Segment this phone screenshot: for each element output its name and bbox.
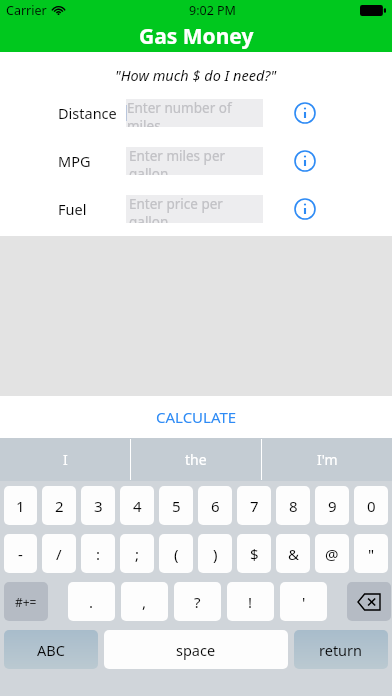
staticText: ? bbox=[194, 592, 201, 612]
staticText: #+= bbox=[15, 594, 37, 610]
staticText: 1 bbox=[16, 496, 25, 516]
button[interactable]: Info about MPG bbox=[291, 147, 319, 175]
staticText: Distance bbox=[58, 103, 117, 123]
button[interactable]: Info about Fuel bbox=[291, 195, 319, 223]
staticText: . bbox=[89, 592, 94, 612]
button[interactable]: ; bbox=[120, 534, 154, 573]
button[interactable]: 4 bbox=[120, 486, 154, 525]
staticText: ) bbox=[213, 544, 218, 564]
staticText: - bbox=[18, 544, 23, 564]
staticText: space bbox=[176, 640, 216, 660]
staticText: & bbox=[288, 544, 299, 564]
button[interactable]: Info about Distance bbox=[291, 99, 319, 127]
button[interactable]: Backspace bbox=[347, 582, 391, 621]
button[interactable]: space bbox=[104, 630, 288, 669]
staticText: @ bbox=[325, 544, 339, 564]
staticText: 7 bbox=[250, 496, 259, 516]
staticText: 9 bbox=[328, 496, 337, 516]
staticText: : bbox=[96, 544, 101, 564]
button[interactable]: CALCULATE bbox=[0, 396, 392, 438]
button[interactable]: 2 bbox=[42, 486, 76, 525]
staticText: 4 bbox=[133, 496, 142, 516]
staticText: 9:02 PM bbox=[189, 2, 236, 19]
button[interactable]: ? bbox=[174, 582, 221, 621]
staticText: CALCULATE bbox=[156, 407, 237, 427]
button[interactable]: I'm bbox=[262, 438, 392, 481]
staticText: I'm bbox=[317, 450, 338, 469]
staticText: " bbox=[368, 544, 375, 564]
staticText: 0 bbox=[367, 496, 376, 516]
button[interactable]: #+= bbox=[4, 582, 48, 621]
button[interactable]: , bbox=[121, 582, 168, 621]
button[interactable]: 7 bbox=[237, 486, 271, 525]
staticText: ' bbox=[302, 592, 306, 612]
button[interactable]: I bbox=[0, 438, 130, 481]
button[interactable]: the bbox=[131, 438, 261, 481]
button[interactable]: . bbox=[68, 582, 115, 621]
button[interactable]: & bbox=[276, 534, 310, 573]
staticText: Fuel bbox=[58, 199, 87, 219]
staticText: 6 bbox=[211, 496, 220, 516]
staticText: 2 bbox=[55, 496, 64, 516]
staticText: "How much $ do I need?" bbox=[115, 65, 277, 85]
button[interactable]: 0 bbox=[354, 486, 388, 525]
button[interactable]: 8 bbox=[276, 486, 310, 525]
button[interactable]: 5 bbox=[159, 486, 193, 525]
staticText: MPG bbox=[58, 151, 91, 171]
staticText: $ bbox=[250, 544, 259, 564]
button[interactable]: ! bbox=[227, 582, 274, 621]
staticText: I bbox=[63, 450, 68, 469]
staticText: the bbox=[185, 450, 207, 469]
staticText: 8 bbox=[289, 496, 298, 516]
staticText: Carrier bbox=[6, 2, 47, 19]
button[interactable]: " bbox=[354, 534, 388, 573]
button[interactable]: ABC bbox=[4, 630, 98, 669]
staticText: ( bbox=[174, 544, 179, 564]
staticText: ABC bbox=[37, 640, 65, 660]
button[interactable]: ( bbox=[159, 534, 193, 573]
button[interactable]: : bbox=[81, 534, 115, 573]
staticText: , bbox=[142, 592, 147, 612]
button[interactable]: Enter number of miles bbox=[126, 99, 263, 127]
button[interactable]: Enter price per gallon bbox=[126, 195, 263, 223]
button[interactable]: ) bbox=[198, 534, 232, 573]
staticText: Enter number of miles bbox=[127, 99, 263, 127]
staticText: 3 bbox=[94, 496, 103, 516]
button[interactable]: $ bbox=[237, 534, 271, 573]
button[interactable]: @ bbox=[315, 534, 349, 573]
staticText: return bbox=[319, 640, 363, 660]
button[interactable]: / bbox=[42, 534, 76, 573]
button[interactable]: ' bbox=[280, 582, 327, 621]
button[interactable]: - bbox=[4, 534, 37, 573]
button[interactable]: 1 bbox=[4, 486, 37, 525]
staticText: Enter price per gallon bbox=[129, 195, 263, 223]
button[interactable]: 3 bbox=[81, 486, 115, 525]
button[interactable]: return bbox=[294, 630, 388, 669]
staticText: Gas Money bbox=[139, 22, 254, 51]
staticText: ; bbox=[135, 544, 140, 564]
staticText: ! bbox=[248, 592, 253, 612]
button[interactable]: Enter miles per gallon bbox=[126, 147, 263, 175]
staticText: 5 bbox=[172, 496, 181, 516]
button[interactable]: 6 bbox=[198, 486, 232, 525]
staticText: Enter miles per gallon bbox=[129, 147, 263, 175]
button[interactable]: 9 bbox=[315, 486, 349, 525]
staticText: / bbox=[56, 544, 62, 564]
